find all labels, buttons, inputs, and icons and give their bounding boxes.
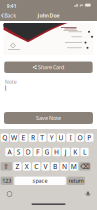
staticText: C <box>34 162 38 171</box>
button[interactable]: 123 <box>1 177 13 185</box>
button[interactable]: Back <box>0 10 19 21</box>
button[interactable]: Z <box>13 162 21 171</box>
button[interactable]: Save Note <box>4 112 93 124</box>
staticText: L <box>83 148 86 156</box>
button[interactable]: N <box>60 162 68 171</box>
button[interactable]: ⌫ <box>79 162 91 171</box>
button[interactable]: Emoji keyboard <box>6 191 12 197</box>
button[interactable]: V <box>41 162 50 171</box>
button[interactable]: Dictation <box>85 191 91 197</box>
button[interactable]: U <box>57 133 65 142</box>
button[interactable]: K <box>71 148 79 156</box>
staticText: S <box>17 148 21 156</box>
button[interactable]: H <box>52 148 60 156</box>
staticText: ⌫ <box>80 163 89 170</box>
button[interactable]: X <box>23 162 31 171</box>
button[interactable]: B <box>51 162 59 171</box>
staticText: V <box>44 162 48 171</box>
button[interactable]: W <box>10 133 18 142</box>
staticText: Y <box>50 133 54 142</box>
staticText: Z <box>15 162 19 171</box>
staticText: return <box>68 177 83 184</box>
staticText: N <box>62 162 67 171</box>
button[interactable]: Y <box>48 133 56 142</box>
staticText: M <box>71 162 77 171</box>
staticText: J <box>65 148 67 156</box>
button[interactable]: E <box>19 133 28 142</box>
button[interactable]: return <box>67 177 85 185</box>
staticText: Note <box>5 78 17 85</box>
staticText: ⇧ <box>3 163 9 170</box>
button[interactable]: S <box>15 148 23 156</box>
button[interactable]: space <box>14 177 66 185</box>
button[interactable]: I <box>66 133 75 142</box>
staticText: F <box>36 148 39 156</box>
button[interactable]: Q <box>1 133 9 142</box>
staticText: Share Card <box>38 64 64 71</box>
staticText: D <box>26 148 31 156</box>
staticText: O <box>77 133 82 142</box>
button[interactable]: J <box>62 148 70 156</box>
staticText: B <box>53 162 57 171</box>
staticText: R <box>31 133 35 142</box>
staticText: X <box>25 162 29 171</box>
button[interactable]: ⇧ <box>1 162 12 171</box>
staticText: T <box>40 133 44 142</box>
button[interactable]: Share Card <box>4 61 93 73</box>
staticText: John Doe <box>37 12 59 19</box>
staticText: W <box>11 133 17 142</box>
staticText: 123 <box>2 177 11 184</box>
staticText: A <box>7 148 11 156</box>
staticText: U <box>59 133 64 142</box>
staticText: K <box>73 148 77 156</box>
staticText: E <box>21 133 25 142</box>
staticText: Q <box>2 133 7 142</box>
button[interactable]: L <box>80 148 89 156</box>
button[interactable]: A <box>5 148 13 156</box>
button[interactable]: M <box>70 162 78 171</box>
button[interactable]: O <box>76 133 84 142</box>
staticText: 9:41 <box>7 2 17 9</box>
button[interactable]: G <box>43 148 51 156</box>
staticText: I <box>69 133 71 142</box>
button[interactable]: P <box>85 133 93 142</box>
staticText: P <box>87 133 91 142</box>
staticText: Save Note <box>36 114 61 122</box>
staticText: G <box>44 148 49 156</box>
staticText: H <box>54 148 59 156</box>
staticText: space <box>32 177 47 184</box>
button[interactable]: T <box>38 133 46 142</box>
button[interactable]: C <box>32 162 40 171</box>
staticText: Back <box>4 12 16 19</box>
button[interactable]: D <box>24 148 32 156</box>
button[interactable]: R <box>29 133 37 142</box>
button[interactable]: F <box>33 148 42 156</box>
